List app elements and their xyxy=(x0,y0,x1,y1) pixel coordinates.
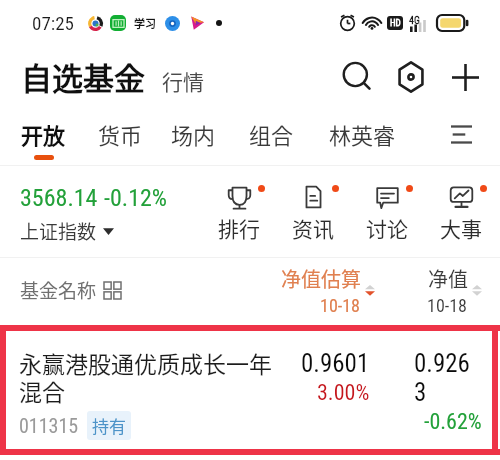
staticText: 排行 xyxy=(218,213,260,243)
staticText: 3568.14 xyxy=(20,184,98,212)
staticText: 货币 xyxy=(98,118,143,150)
staticText: 组合 xyxy=(249,118,294,150)
staticText: 3.00% xyxy=(317,380,370,406)
staticText: HD xyxy=(390,18,401,29)
staticText: 行情 xyxy=(162,66,204,96)
button[interactable]: 开放 xyxy=(21,108,66,160)
staticText: 011315 xyxy=(19,414,79,437)
button[interactable]: More tabs xyxy=(439,112,483,156)
staticText: 10-18 xyxy=(320,295,361,316)
staticText: 净值估算 xyxy=(281,264,361,293)
button[interactable]: 组合 xyxy=(249,108,294,160)
staticText: 上证指数 xyxy=(20,217,97,245)
staticText: 0.9263 xyxy=(414,349,482,407)
staticText: 学习 xyxy=(134,15,156,31)
staticText: -0.62% xyxy=(424,409,482,435)
staticText: 净值 xyxy=(428,264,468,293)
staticText: 大事 xyxy=(440,213,482,243)
staticText: 10-18 xyxy=(427,295,468,316)
button[interactable]: 净值估算 xyxy=(281,264,375,316)
button[interactable]: 林英睿 xyxy=(329,108,396,160)
staticText: 自选基金 xyxy=(21,54,145,99)
button[interactable]: Add xyxy=(438,52,492,102)
button[interactable]: 场内 xyxy=(171,108,216,160)
staticText: 开放 xyxy=(21,118,66,150)
staticText: 讨论 xyxy=(366,213,408,243)
button[interactable]: 基金名称 xyxy=(20,276,121,304)
staticText: 4G xyxy=(409,15,420,27)
button[interactable]: 讨论 xyxy=(350,180,424,243)
button[interactable]: 大事 xyxy=(424,180,498,243)
button[interactable]: 3568.14 xyxy=(20,184,168,245)
staticText: 07:25 xyxy=(32,12,74,34)
staticText: 场内 xyxy=(171,118,216,150)
button[interactable]: 永赢港股通优质成长一年混合 xyxy=(19,325,482,455)
button[interactable]: 净值 xyxy=(427,264,482,316)
button[interactable]: 资讯 xyxy=(276,180,350,243)
button[interactable]: Search xyxy=(330,52,384,102)
staticText: 基金名称 xyxy=(20,276,97,304)
staticText: -0.12% xyxy=(104,184,168,212)
button[interactable]: Settings xyxy=(384,52,438,102)
staticText: 持有 xyxy=(92,413,126,438)
staticText: 0.9601 xyxy=(301,349,370,378)
button[interactable]: 货币 xyxy=(98,108,143,160)
staticText: 永赢港股通优质成长一年混合 xyxy=(19,346,281,408)
staticText: 资讯 xyxy=(292,213,334,243)
button[interactable]: 排行 xyxy=(202,180,276,243)
staticText: 林英睿 xyxy=(329,118,396,150)
